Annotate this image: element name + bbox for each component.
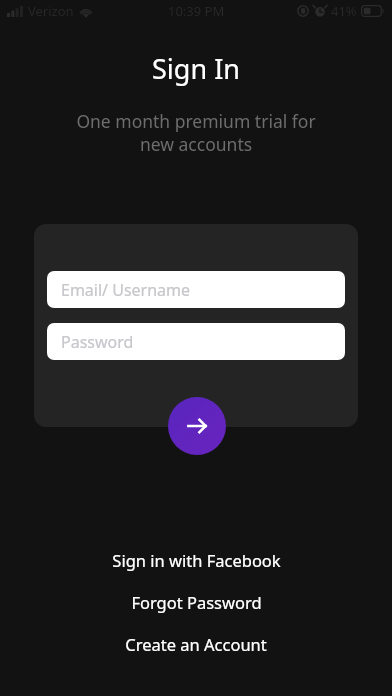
button[interactable]: Forgot Password (0, 591, 392, 613)
staticText: Sign in with Facebook (112, 549, 281, 571)
button[interactable]: Sign in (168, 397, 226, 455)
button[interactable]: Sign in with Facebook (0, 549, 392, 571)
staticText: 10:39 PM (168, 2, 225, 20)
button[interactable]: Email/ Username (47, 271, 345, 308)
staticText: Create an Account (125, 633, 267, 655)
staticText: One month premium trial for new accounts (40, 109, 352, 156)
staticText: 41% (331, 2, 357, 20)
button[interactable]: Password (47, 323, 345, 360)
staticText: Password (61, 331, 134, 353)
staticText: Verizon (28, 2, 74, 20)
button[interactable]: Create an Account (0, 633, 392, 655)
staticText: Sign In (0, 50, 392, 87)
staticText: Email/ Username (61, 279, 191, 301)
staticText: Forgot Password (131, 591, 262, 613)
